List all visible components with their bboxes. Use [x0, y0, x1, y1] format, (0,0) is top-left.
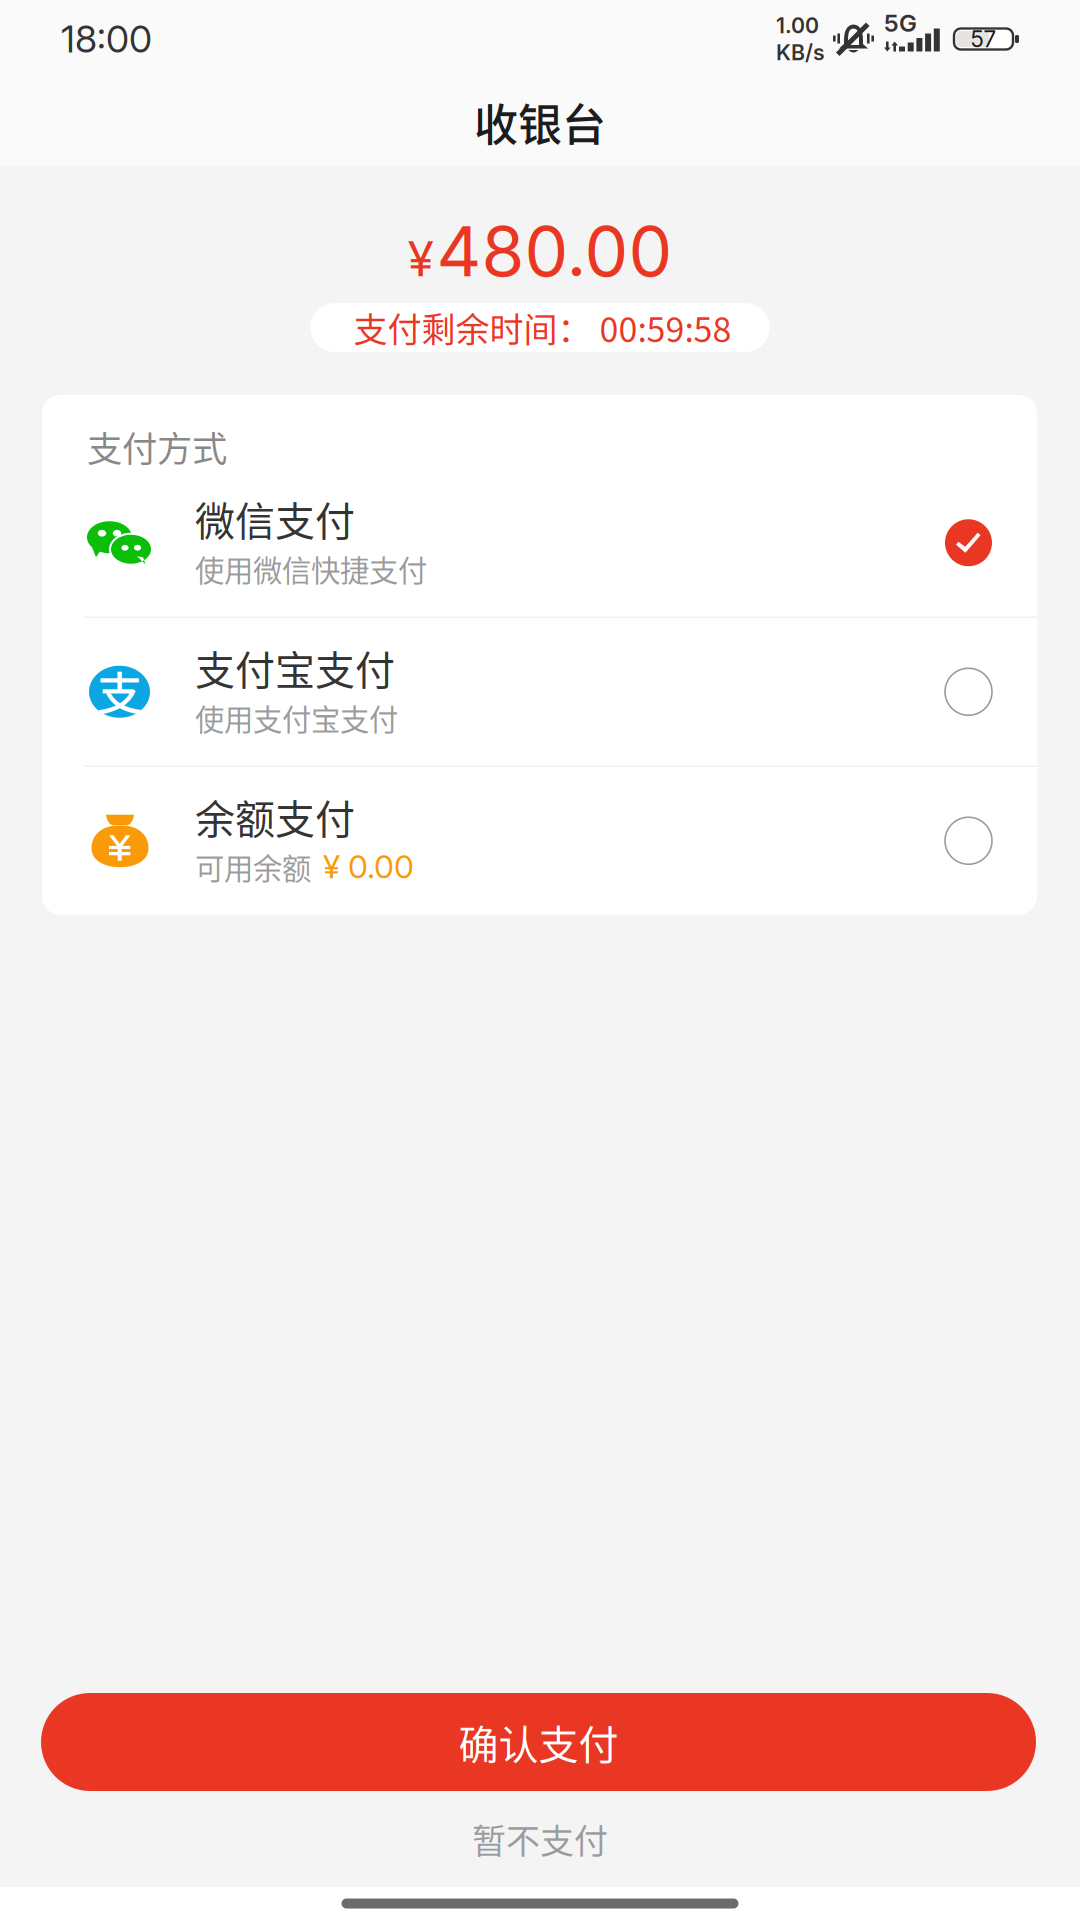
staticText: ¥ — [407, 230, 433, 288]
staticText: 18:00 — [61, 16, 152, 62]
staticText: ¥ 0.00 — [323, 847, 414, 886]
staticText: 余额支付 — [195, 788, 355, 845]
button[interactable]: 支 — [42, 618, 1037, 765]
staticText: 确认支付 — [458, 1713, 618, 1771]
staticText: 可用余额 — [195, 845, 311, 888]
staticText: KB/s — [776, 39, 825, 65]
staticText: 使用支付宝支付 — [195, 696, 398, 739]
staticText: 使用微信快捷支付 — [195, 547, 427, 590]
staticText: 57 — [970, 25, 996, 53]
button[interactable]: 确认支付 — [41, 1693, 1036, 1791]
button[interactable]: 微信支付 — [42, 469, 1037, 616]
staticText: 支付宝支付 — [195, 639, 395, 696]
staticText: 收银台 — [474, 90, 606, 154]
staticText: 支付剩余时间： 00:59:58 — [353, 303, 731, 352]
staticText: 480.00 — [436, 209, 672, 293]
staticText: 5G — [884, 8, 917, 37]
staticText: 微信支付 — [195, 490, 355, 547]
button[interactable]: 余额支付 — [42, 767, 1037, 914]
staticText: 支付方式 — [87, 421, 227, 472]
staticText: 1.00 — [776, 13, 819, 38]
staticText: 支 — [97, 658, 142, 723]
button[interactable]: 暂不支付 — [0, 1791, 1080, 1887]
staticText: 暂不支付 — [472, 1814, 608, 1864]
